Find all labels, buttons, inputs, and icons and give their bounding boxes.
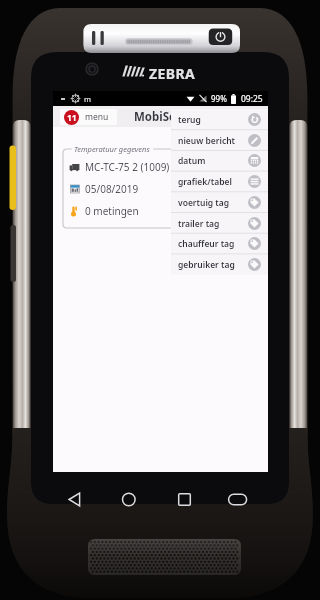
button[interactable]: 11 [60, 109, 117, 125]
button[interactable]: grafiek/tabel [171, 171, 268, 192]
staticText: 09:25 [241, 93, 263, 105]
button[interactable]: terug [171, 109, 268, 130]
staticText: ZEBRA [149, 64, 196, 83]
staticText: trailer tag [178, 218, 220, 230]
staticText: terug [178, 114, 201, 126]
button[interactable]: gebruiker tag [171, 254, 268, 275]
button[interactable]: datum [171, 150, 268, 171]
staticText: voertuig tag [178, 197, 230, 209]
button[interactable]: trailer tag [171, 213, 268, 234]
staticText: 99% [211, 93, 227, 104]
button[interactable]: chauffeur tag [171, 233, 268, 254]
staticText: datum [178, 155, 206, 167]
button[interactable]: voertuig tag [171, 192, 268, 213]
staticText: grafiek/tabel [178, 176, 232, 188]
staticText: Temperatuur gegevens [74, 144, 150, 154]
staticText: 05/08/2019 [85, 182, 139, 196]
staticText: 11 [67, 112, 77, 124]
staticText: MC-TC-75 2 (1009) [85, 160, 170, 174]
staticText: nieuw bericht [178, 135, 236, 147]
staticText: MobiScout [134, 109, 195, 125]
staticText: chauffeur tag [178, 238, 235, 250]
staticText: m [84, 94, 92, 104]
staticText: 0 metingen [85, 204, 139, 218]
button[interactable]: nieuw bericht [171, 130, 268, 151]
staticText: gebruiker tag [178, 259, 235, 271]
staticText: menu [85, 111, 109, 123]
